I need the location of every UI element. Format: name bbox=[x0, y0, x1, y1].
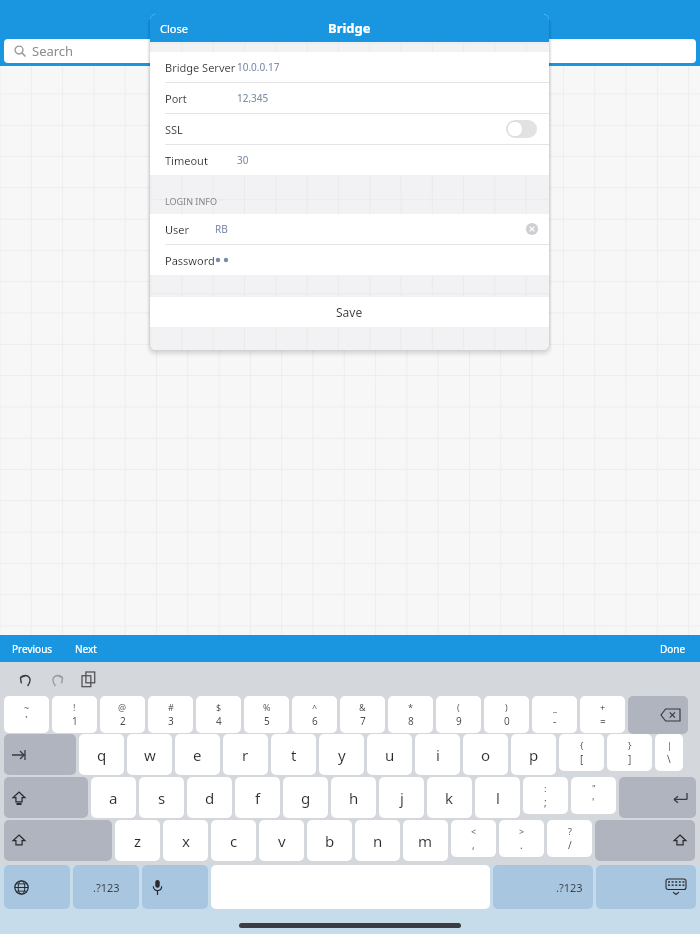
button[interactable]: y bbox=[319, 734, 364, 775]
button[interactable]: n bbox=[355, 820, 400, 861]
button[interactable]: z bbox=[115, 820, 160, 861]
button[interactable]: Dictation bbox=[142, 865, 208, 909]
staticText: 1 bbox=[72, 714, 78, 728]
staticText: 10.0.0.17 bbox=[237, 60, 280, 74]
staticText: x bbox=[182, 831, 190, 851]
button[interactable]: q bbox=[79, 734, 124, 775]
button[interactable]: p bbox=[511, 734, 556, 775]
button[interactable]: w bbox=[127, 734, 172, 775]
button[interactable]: Return bbox=[619, 777, 696, 818]
button[interactable]: Backspace bbox=[628, 696, 688, 734]
button[interactable]: * bbox=[388, 696, 433, 733]
staticText: j bbox=[400, 788, 404, 808]
button[interactable]: x bbox=[163, 820, 208, 861]
staticText: \ bbox=[667, 752, 671, 766]
button[interactable]: Previous bbox=[0, 637, 65, 661]
button[interactable]: | bbox=[655, 734, 683, 771]
button[interactable]: i bbox=[415, 734, 460, 775]
button[interactable]: & bbox=[340, 696, 385, 733]
button[interactable]: Shift bbox=[4, 820, 112, 861]
button[interactable]: # bbox=[148, 696, 193, 733]
button[interactable]: r bbox=[223, 734, 268, 775]
staticText: l bbox=[496, 788, 500, 808]
button[interactable]: Clear text bbox=[525, 222, 539, 236]
button[interactable]: .?123 bbox=[73, 865, 139, 909]
button[interactable]: Save bbox=[150, 297, 549, 327]
button[interactable]: ! bbox=[52, 696, 97, 733]
button[interactable]: SSL bbox=[150, 114, 549, 144]
button[interactable]: Close bbox=[150, 14, 198, 42]
button[interactable]: Change keyboard bbox=[4, 865, 70, 909]
staticText: u bbox=[385, 745, 395, 765]
staticText: _ bbox=[553, 701, 557, 713]
button[interactable]: f bbox=[235, 777, 280, 818]
button[interactable]: : bbox=[523, 777, 568, 814]
button[interactable]: h bbox=[331, 777, 376, 818]
staticText: y bbox=[338, 745, 346, 765]
button[interactable]: ~ bbox=[4, 696, 49, 733]
button[interactable]: Tab bbox=[4, 734, 76, 775]
button[interactable]: Port bbox=[150, 83, 549, 113]
staticText: & bbox=[359, 701, 366, 713]
button[interactable]: ^ bbox=[292, 696, 337, 733]
button[interactable]: Next bbox=[65, 637, 107, 661]
button[interactable]: + bbox=[580, 696, 625, 733]
button[interactable]: Bridge Server bbox=[150, 52, 549, 82]
button[interactable]: @ bbox=[100, 696, 145, 733]
button[interactable]: l bbox=[475, 777, 520, 818]
button[interactable]: { bbox=[559, 734, 604, 771]
button[interactable]: < bbox=[451, 820, 496, 857]
staticText: s bbox=[158, 788, 166, 808]
button[interactable]: $ bbox=[196, 696, 241, 733]
button[interactable]: k bbox=[427, 777, 472, 818]
staticText: # bbox=[168, 701, 174, 713]
button[interactable]: SSL toggle bbox=[506, 120, 537, 138]
button[interactable]: b bbox=[307, 820, 352, 861]
button[interactable]: m bbox=[403, 820, 448, 861]
staticText: Search bbox=[32, 42, 74, 60]
button[interactable]: Done bbox=[646, 637, 700, 661]
button[interactable]: t bbox=[271, 734, 316, 775]
staticText: Close bbox=[160, 21, 188, 36]
button[interactable]: Caps Lock bbox=[4, 777, 88, 818]
staticText: ^ bbox=[312, 701, 318, 713]
staticText: v bbox=[278, 831, 286, 851]
button[interactable]: .?123 bbox=[493, 865, 593, 909]
button[interactable]: _ bbox=[532, 696, 577, 733]
staticText: - bbox=[553, 714, 557, 728]
button[interactable]: j bbox=[379, 777, 424, 818]
button[interactable]: d bbox=[187, 777, 232, 818]
button[interactable]: Redo bbox=[45, 667, 69, 691]
button[interactable]: ? bbox=[547, 820, 592, 857]
staticText: LOGIN INFO bbox=[165, 195, 217, 207]
button[interactable]: c bbox=[211, 820, 256, 861]
button[interactable]: u bbox=[367, 734, 412, 775]
button[interactable]: s bbox=[139, 777, 184, 818]
button[interactable]: Password bbox=[150, 245, 549, 275]
staticText: @ bbox=[118, 701, 127, 713]
button[interactable]: } bbox=[607, 734, 652, 771]
button[interactable]: > bbox=[499, 820, 544, 857]
button[interactable]: Timeout bbox=[150, 145, 549, 175]
button[interactable]: User bbox=[150, 214, 549, 244]
button[interactable]: Undo bbox=[14, 667, 38, 691]
button[interactable]: a bbox=[91, 777, 136, 818]
button[interactable]: ) bbox=[484, 696, 529, 733]
button[interactable]: o bbox=[463, 734, 508, 775]
staticText: m bbox=[418, 831, 433, 851]
button[interactable]: " bbox=[571, 777, 616, 814]
button[interactable]: Hide keyboard bbox=[596, 865, 696, 909]
staticText: Bridge bbox=[324, 12, 374, 32]
staticText: Previous bbox=[12, 642, 53, 656]
button[interactable]: Shift bbox=[595, 820, 695, 861]
button[interactable]: e bbox=[175, 734, 220, 775]
staticText: i bbox=[436, 745, 440, 765]
button[interactable]: Search bbox=[4, 39, 696, 63]
button[interactable]: v bbox=[259, 820, 304, 861]
button[interactable]: % bbox=[244, 696, 289, 733]
button[interactable]: ( bbox=[436, 696, 481, 733]
button[interactable]: Paste bbox=[76, 667, 100, 691]
staticText: ] bbox=[628, 752, 632, 766]
button[interactable]: g bbox=[283, 777, 328, 818]
